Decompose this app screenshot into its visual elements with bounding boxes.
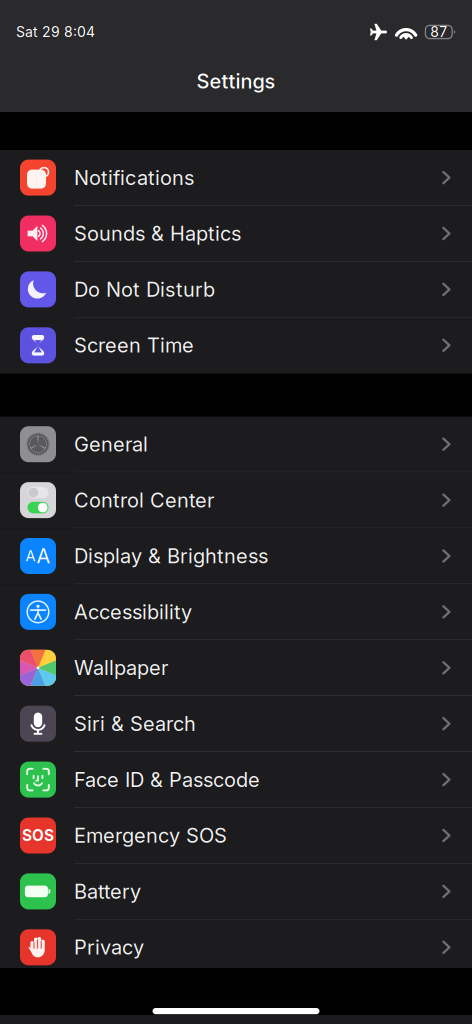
staticText: Notifications: [74, 165, 194, 190]
button[interactable]: Accessibility: [0, 584, 472, 640]
staticText: Emergency SOS: [74, 823, 227, 848]
staticText: Sounds & Haptics: [74, 221, 241, 246]
button[interactable]: Do Not Disturb: [0, 262, 472, 318]
staticText: 87: [430, 23, 447, 40]
staticText: Battery: [74, 879, 141, 903]
button[interactable]: Screen Time: [0, 318, 472, 374]
staticText: Display & Brightness: [74, 544, 268, 568]
staticText: Sat 29 8:04: [16, 23, 95, 40]
button[interactable]: Battery: [0, 864, 472, 920]
staticText: Siri & Search: [74, 712, 196, 736]
button[interactable]: A: [0, 528, 472, 584]
button[interactable]: Siri & Search: [0, 696, 472, 752]
button[interactable]: Face ID & Passcode: [0, 752, 472, 808]
staticText: Control Center: [74, 488, 214, 512]
staticText: Do Not Disturb: [74, 277, 215, 301]
button[interactable]: SOS: [0, 808, 472, 864]
staticText: General: [74, 432, 148, 456]
staticText: SOS: [22, 826, 54, 845]
staticText: A: [25, 547, 35, 565]
button[interactable]: Sounds & Haptics: [0, 206, 472, 262]
staticText: Privacy: [74, 935, 144, 959]
staticText: Wallpaper: [74, 656, 168, 680]
button[interactable]: Privacy: [0, 920, 472, 976]
staticText: Settings: [196, 69, 275, 93]
staticText: A: [36, 544, 50, 568]
staticText: Accessibility: [74, 600, 192, 624]
button[interactable]: Notifications: [0, 150, 472, 206]
button[interactable]: Wallpaper: [0, 640, 472, 696]
button[interactable]: General: [0, 417, 472, 472]
staticText: Screen Time: [74, 333, 194, 357]
staticText: Face ID & Passcode: [74, 767, 260, 792]
button[interactable]: Control Center: [0, 472, 472, 528]
